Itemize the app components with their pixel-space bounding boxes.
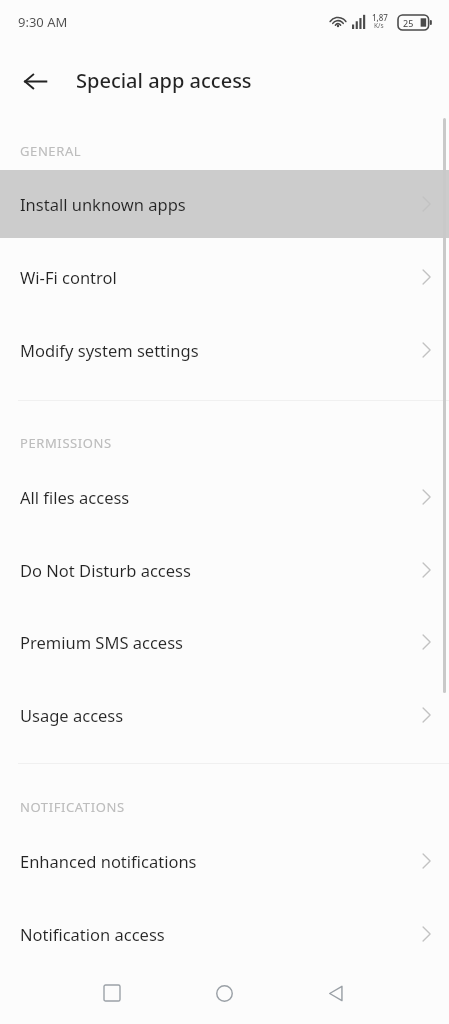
staticText: NOTIFICATIONS [20,798,125,816]
staticText: Do Not Disturb access [20,559,191,581]
staticText: Notification access [20,923,165,945]
staticText: Special app access [76,67,252,94]
staticText: GENERAL [20,142,82,160]
staticText: All files access [20,486,130,508]
button[interactable]: Back [310,967,362,1019]
button[interactable]: Back [12,58,58,104]
button[interactable]: Recent apps [86,967,138,1019]
button[interactable]: Wi-Fi control [0,243,449,311]
staticText: 1,87 [372,12,388,23]
staticText: Usage access [20,704,124,726]
staticText: Modify system settings [20,339,199,361]
button[interactable]: Install unknown apps [0,170,449,238]
button[interactable]: Enhanced notifications [0,827,449,895]
staticText: Install unknown apps [20,193,186,215]
staticText: Premium SMS access [20,631,183,653]
staticText: 25 [403,17,414,29]
button[interactable]: Home [198,967,250,1019]
button[interactable]: Premium SMS access [0,608,449,676]
button[interactable]: Do Not Disturb access [0,536,449,604]
button[interactable]: Usage access [0,681,449,749]
staticText: 9:30 AM [18,13,68,31]
staticText: Wi-Fi control [20,266,117,288]
staticText: Enhanced notifications [20,850,197,872]
button[interactable]: Notification access [0,900,449,968]
staticText: K/s [374,21,384,30]
staticText: PERMISSIONS [20,434,112,452]
button[interactable]: Modify system settings [0,316,449,384]
button[interactable]: All files access [0,463,449,531]
